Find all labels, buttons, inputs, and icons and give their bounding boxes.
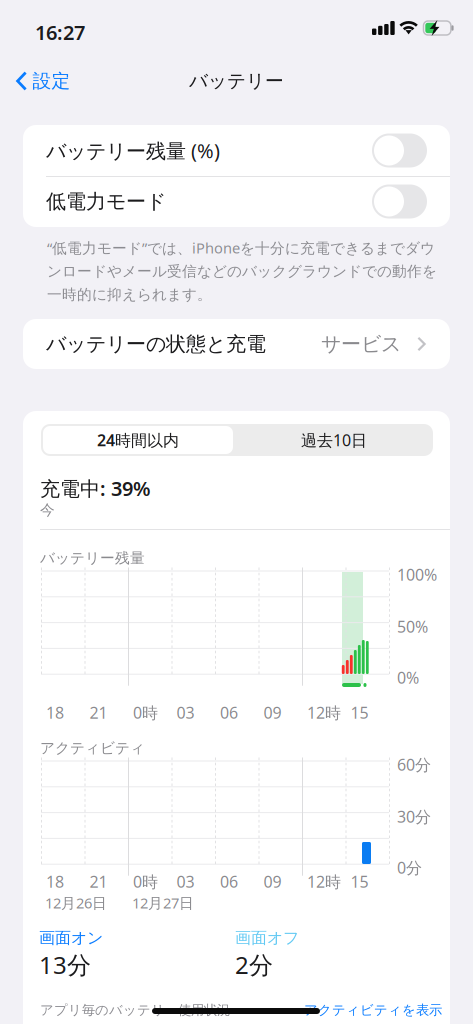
staticText: 画面オン <box>39 928 103 948</box>
staticText: 60分 <box>397 754 431 775</box>
staticText: アクティビティを表示 <box>304 1002 442 1018</box>
staticText: 15 <box>350 871 368 892</box>
staticText: 21 <box>89 702 107 723</box>
staticText: 24時間以内 <box>97 429 179 451</box>
staticText: バッテリー <box>189 69 284 92</box>
staticText: 09 <box>263 702 281 723</box>
staticText: 今 <box>40 501 55 519</box>
staticText: バッテリーの状態と充電 <box>46 332 266 356</box>
button[interactable]: 過去10日 <box>237 424 431 456</box>
staticText: 15 <box>350 702 368 723</box>
staticText: 03 <box>176 871 194 892</box>
staticText: 100% <box>397 564 437 585</box>
staticText: 06 <box>220 871 238 892</box>
staticText: 画面オフ <box>235 928 299 948</box>
staticText: 12月27日 <box>132 893 194 912</box>
staticText: 0分 <box>397 857 422 878</box>
staticText: アクティビティ <box>40 739 145 757</box>
button[interactable]: 24時間以内 <box>41 424 235 456</box>
staticText: 16:27 <box>35 19 85 46</box>
staticText: アプリ毎のバッテリー使用状況 <box>40 1002 230 1018</box>
staticText: 21 <box>89 871 107 892</box>
staticText: サービス <box>321 332 401 356</box>
button[interactable]: バッテリーの状態と充電 <box>23 319 450 369</box>
staticText: 0時 <box>133 871 158 892</box>
staticText: 設定 <box>32 69 70 92</box>
staticText: 一時的に抑えられます。 <box>47 285 212 303</box>
staticText: 18 <box>46 871 64 892</box>
staticText: 12月26日 <box>45 893 107 912</box>
staticText: 09 <box>263 871 281 892</box>
staticText: 0時 <box>133 702 158 723</box>
staticText: 18 <box>46 702 64 723</box>
staticText: 12時 <box>307 702 341 723</box>
staticText: 13分 <box>39 949 91 981</box>
staticText: 低電力モード <box>46 189 166 214</box>
staticText: 30分 <box>397 806 431 827</box>
staticText: 06 <box>220 702 238 723</box>
button[interactable]: アプリ毎のバッテリー使用状況 <box>40 993 442 1024</box>
staticText: “低電力モード”では、iPhoneを十分に充電できるまでダウ <box>47 238 435 257</box>
staticText: バッテリー残量 <box>40 549 145 567</box>
staticText: 50% <box>397 616 428 637</box>
staticText: 03 <box>176 702 194 723</box>
staticText: ンロードやメール受信などのバックグラウンドでの動作を <box>47 262 437 280</box>
staticText: バッテリー残量 (%) <box>46 137 220 164</box>
staticText: 12時 <box>307 871 341 892</box>
button[interactable]: 低電力モード <box>23 176 450 227</box>
staticText: 0% <box>397 667 419 688</box>
staticText: 2分 <box>235 949 273 981</box>
button[interactable]: 設定 <box>16 64 106 98</box>
button[interactable]: バッテリー残量 (%) <box>23 125 450 176</box>
staticText: 充電中: 39% <box>40 475 151 502</box>
staticText: 過去10日 <box>301 429 367 451</box>
